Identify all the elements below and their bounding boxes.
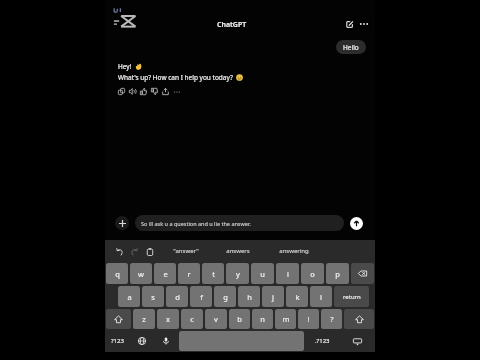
staticText: i: [287, 269, 289, 279]
button[interactable]: Share: [162, 88, 169, 95]
button[interactable]: w: [130, 263, 152, 284]
staticText: y: [236, 269, 240, 279]
button[interactable]: n: [252, 309, 273, 329]
staticText: a: [127, 292, 132, 302]
button[interactable]: So ill ask u a question and u lie the an…: [135, 215, 344, 231]
button[interactable]: Hide keyboard: [340, 330, 375, 352]
staticText: f: [200, 292, 203, 302]
staticText: return: [343, 293, 361, 301]
staticText: t: [212, 269, 215, 279]
staticText: q: [115, 269, 120, 279]
button[interactable]: Backspace: [351, 263, 374, 284]
staticText: h: [247, 292, 252, 302]
staticText: ChatGPT: [217, 20, 247, 30]
staticText: v: [214, 314, 218, 324]
button[interactable]: "answer": [160, 243, 212, 259]
staticText: d: [175, 292, 180, 302]
button[interactable]: c: [181, 309, 203, 329]
button[interactable]: Send: [350, 217, 363, 230]
staticText: ?123: [111, 337, 124, 345]
button[interactable]: Add attachment: [115, 216, 129, 230]
button[interactable]: s: [142, 286, 164, 307]
button[interactable]: Good response: [140, 88, 147, 95]
button[interactable]: Change language: [130, 330, 154, 352]
button[interactable]: o: [301, 263, 324, 284]
staticText: m: [282, 314, 290, 324]
staticText: s: [151, 292, 155, 302]
staticText: w: [138, 269, 144, 279]
staticText: answers: [226, 247, 250, 255]
button[interactable]: z: [133, 309, 155, 329]
button[interactable]: Undo: [114, 246, 125, 257]
button[interactable]: Clipboard: [144, 246, 155, 257]
button[interactable]: More options: [358, 18, 370, 30]
button[interactable]: ?123: [105, 330, 130, 352]
staticText: n: [260, 314, 265, 324]
button[interactable]: x: [157, 309, 179, 329]
staticText: e: [163, 269, 168, 279]
button[interactable]: p: [326, 263, 349, 284]
staticText: So ill ask u a question and u lie the an…: [141, 220, 251, 227]
button[interactable]: return: [334, 286, 369, 307]
button[interactable]: answers: [212, 243, 264, 259]
staticText: !: [307, 314, 310, 324]
staticText: What's up? How can I help you today?: [118, 73, 233, 82]
button[interactable]: More: [174, 89, 180, 95]
staticText: x: [166, 314, 170, 324]
staticText: r: [187, 269, 191, 279]
button[interactable]: answering: [268, 243, 320, 259]
button[interactable]: r: [178, 263, 200, 284]
staticText: u: [260, 269, 265, 279]
button[interactable]: .?123: [305, 330, 340, 352]
button[interactable]: Shift: [106, 309, 131, 329]
button[interactable]: y: [226, 263, 249, 284]
staticText: Hello: [343, 43, 359, 52]
button[interactable]: New chat: [343, 18, 355, 30]
staticText: l: [320, 292, 322, 302]
staticText: answering: [279, 247, 309, 255]
button[interactable]: i: [276, 263, 299, 284]
button[interactable]: e: [154, 263, 176, 284]
button[interactable]: Read aloud: [129, 88, 136, 95]
staticText: "answer": [173, 247, 199, 255]
button[interactable]: Shift: [344, 309, 374, 329]
button[interactable]: b: [229, 309, 250, 329]
button[interactable]: m: [275, 309, 296, 329]
button[interactable]: Bad response: [151, 88, 158, 95]
button[interactable]: ?: [321, 309, 342, 329]
button[interactable]: d: [166, 286, 188, 307]
staticText: b: [237, 314, 242, 324]
button[interactable]: k: [286, 286, 308, 307]
button[interactable]: j: [262, 286, 284, 307]
button[interactable]: Voice input: [154, 330, 178, 352]
button[interactable]: h: [238, 286, 260, 307]
staticText: j: [272, 292, 274, 302]
button[interactable]: Redo: [128, 246, 139, 257]
staticText: g: [223, 292, 228, 302]
staticText: .?123: [315, 337, 330, 345]
button[interactable]: !: [298, 309, 319, 329]
staticText: Hey!: [118, 62, 132, 71]
button[interactable]: Hello: [336, 40, 366, 54]
staticText: k: [295, 292, 300, 302]
button[interactable]: l: [310, 286, 332, 307]
button[interactable]: g: [214, 286, 236, 307]
staticText: c: [190, 314, 194, 324]
button[interactable]: v: [205, 309, 227, 329]
staticText: ?: [330, 314, 334, 324]
button[interactable]: u: [251, 263, 274, 284]
staticText: p: [335, 269, 340, 279]
button[interactable]: f: [190, 286, 212, 307]
button[interactable]: Copy: [118, 88, 125, 95]
button[interactable]: a: [118, 286, 140, 307]
staticText: z: [142, 314, 146, 324]
staticText: o: [310, 269, 315, 279]
button[interactable]: q: [106, 263, 128, 284]
button[interactable]: t: [202, 263, 224, 284]
